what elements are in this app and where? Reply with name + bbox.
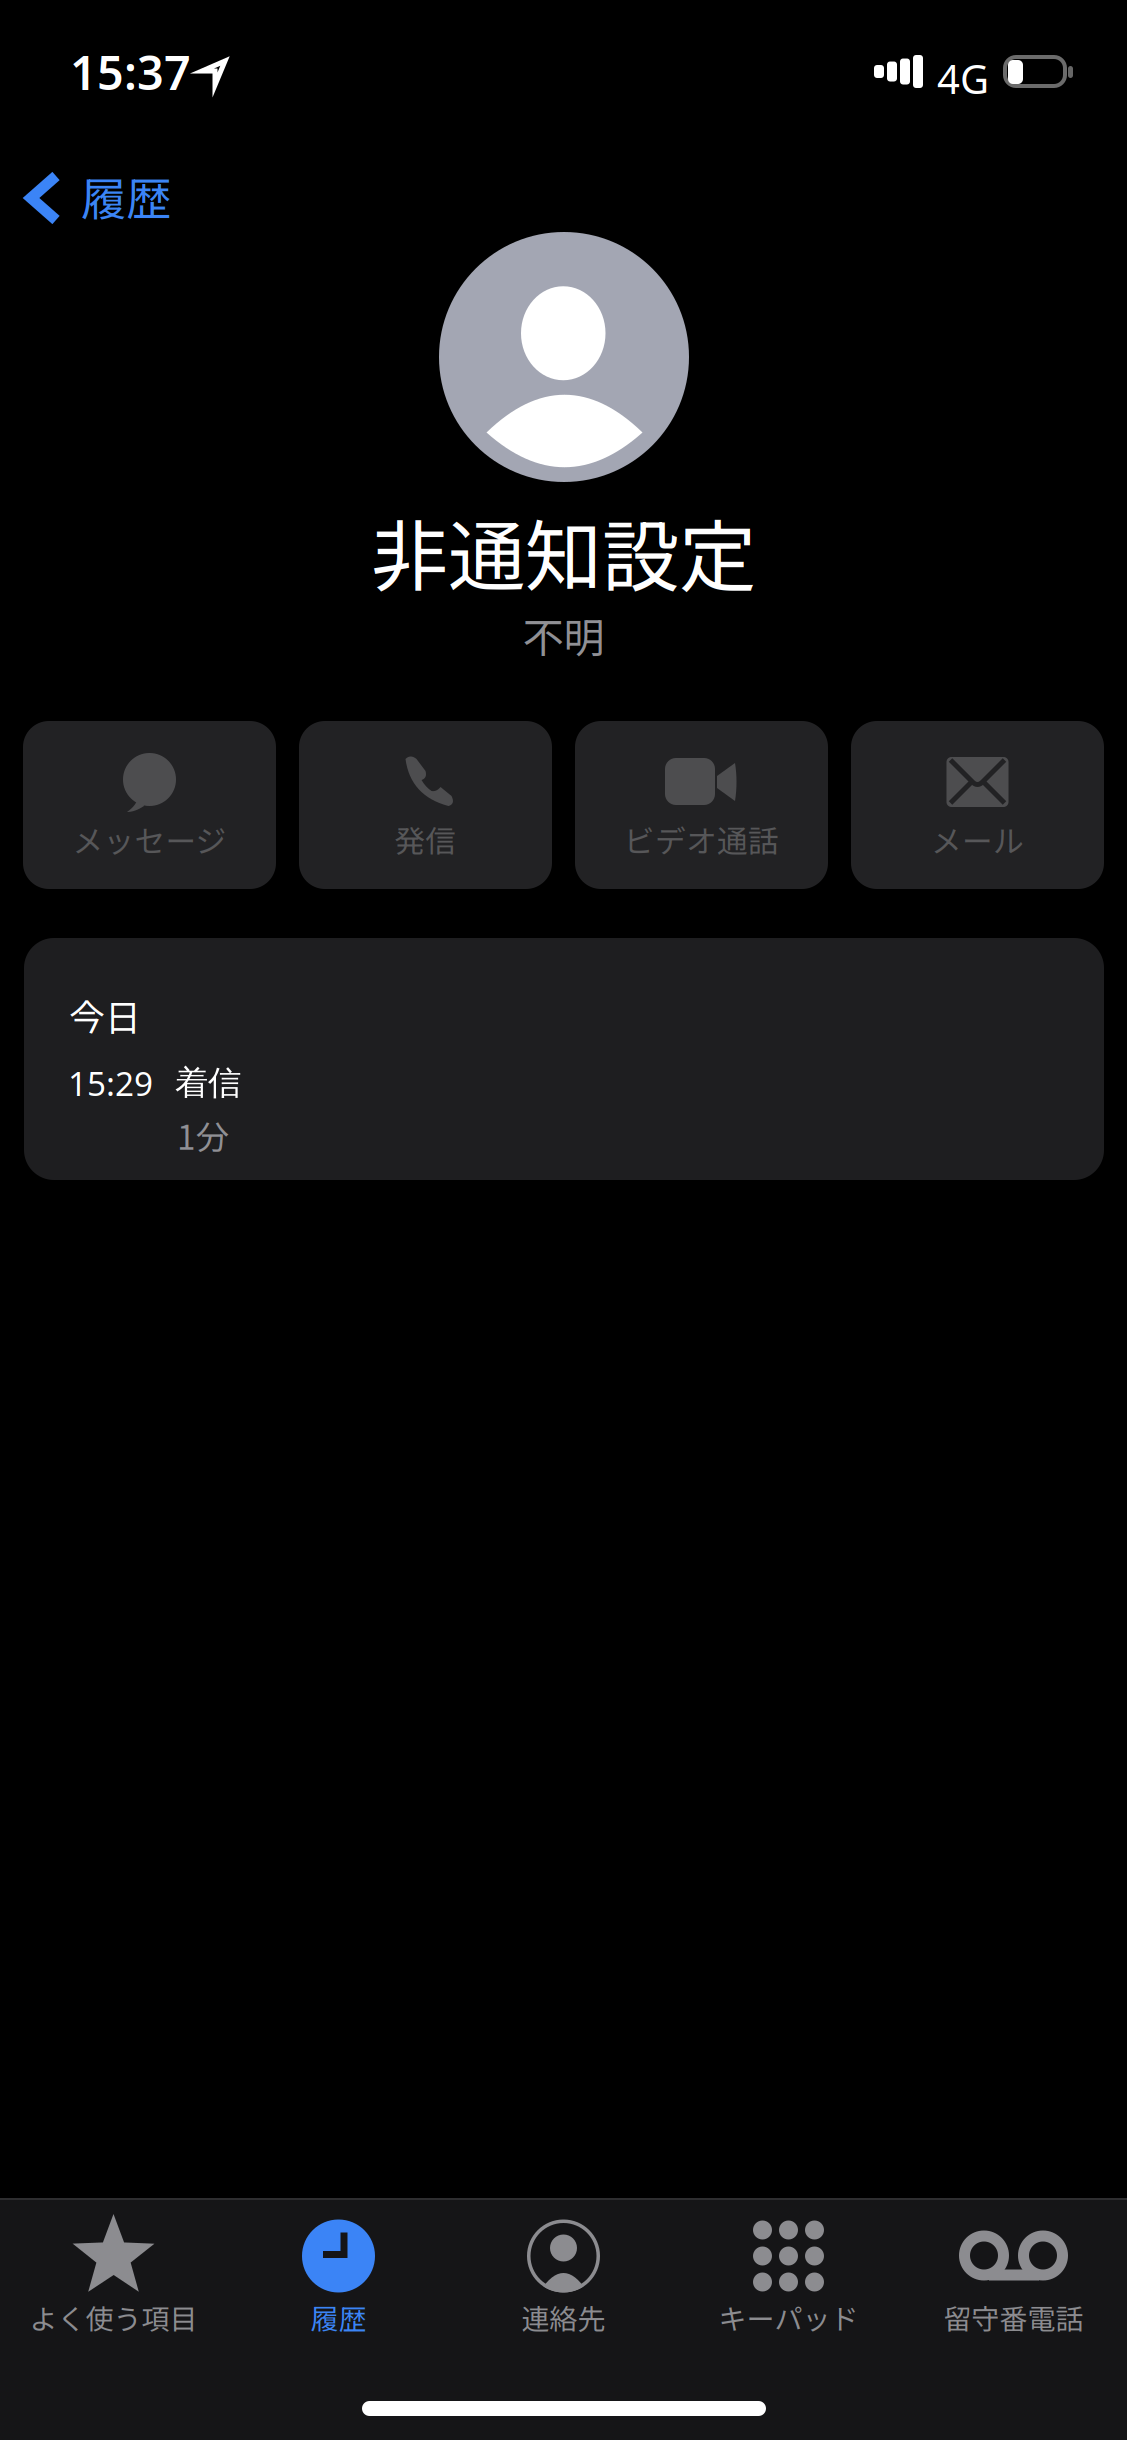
button[interactable]: メッセージ xyxy=(23,721,276,889)
button[interactable]: 発信 xyxy=(299,721,552,889)
button[interactable]: 留守番電話 xyxy=(901,2216,1126,2356)
staticText: 履歴 xyxy=(81,163,171,229)
button[interactable]: キーパッド xyxy=(676,2216,901,2356)
staticText: 着信 xyxy=(175,1062,241,1104)
staticText: キーパッド xyxy=(718,2297,858,2337)
staticText: メッセージ xyxy=(72,817,226,861)
staticText: 留守番電話 xyxy=(943,2297,1083,2337)
button[interactable]: 履歴 xyxy=(5,158,215,242)
staticText: 履歴 xyxy=(310,2297,366,2337)
staticText: ビデオ通話 xyxy=(624,817,779,861)
staticText: 不明 xyxy=(522,605,604,665)
staticText: 4G xyxy=(937,52,989,105)
staticText: 連絡先 xyxy=(521,2297,605,2337)
button[interactable]: 連絡先 xyxy=(451,2216,676,2356)
button[interactable]: メール xyxy=(851,721,1104,889)
button[interactable]: ビデオ通話 xyxy=(575,721,828,889)
staticText: 15:29 xyxy=(68,1061,153,1105)
staticText: 発信 xyxy=(394,817,456,861)
staticText: メール xyxy=(931,817,1024,861)
button[interactable]: 履歴 xyxy=(226,2216,451,2356)
staticText: 今日 xyxy=(69,989,141,1041)
staticText: よく使う項目 xyxy=(29,2297,197,2337)
staticText: 15:37 xyxy=(70,41,191,103)
staticText: 非通知設定 xyxy=(371,495,756,607)
button[interactable]: よく使う項目 xyxy=(1,2216,226,2356)
staticText: 1分 xyxy=(177,1111,229,1159)
